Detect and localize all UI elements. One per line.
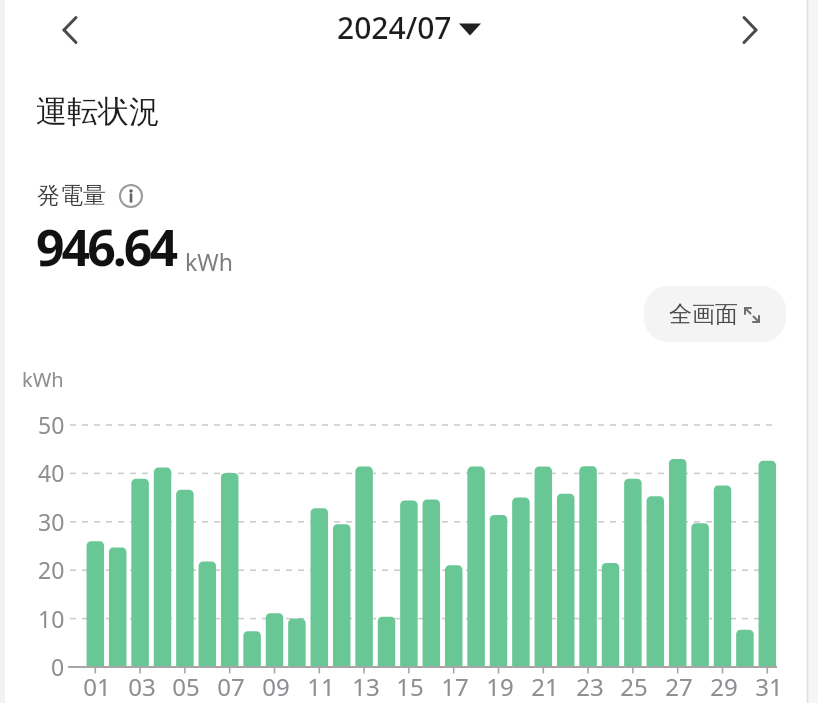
button[interactable] — [50, 8, 90, 52]
staticText: 11 — [307, 670, 335, 703]
staticText: 全画面 — [669, 300, 738, 329]
staticText: 01 — [83, 670, 111, 703]
staticText: 05 — [172, 670, 200, 703]
staticText: 20 — [38, 554, 65, 585]
staticText: 29 — [710, 670, 738, 703]
staticText: 40 — [38, 457, 65, 488]
staticText: kWh — [185, 246, 233, 277]
staticText: 19 — [486, 670, 514, 703]
staticText: 0 — [51, 651, 65, 682]
staticText: 07 — [217, 670, 245, 703]
staticText: 03 — [128, 670, 156, 703]
staticText: kWh — [22, 366, 64, 393]
staticText: 23 — [576, 670, 604, 703]
button[interactable] — [730, 8, 770, 52]
staticText: 発電量 — [37, 181, 106, 210]
button[interactable]: 全画面 — [644, 286, 786, 342]
staticText: 50 — [38, 409, 65, 440]
staticText: 運転状況 — [36, 92, 160, 131]
staticText: 21 — [531, 670, 559, 703]
staticText: 2024/07 — [337, 7, 452, 48]
staticText: 10 — [38, 603, 65, 634]
staticText: 09 — [262, 670, 290, 703]
staticText: 25 — [620, 670, 648, 703]
button[interactable]: 2024/07 — [337, 5, 481, 49]
staticText: 27 — [665, 670, 693, 703]
staticText: 13 — [352, 670, 380, 703]
staticText: 31 — [755, 670, 783, 703]
staticText: 946.64 — [36, 213, 176, 281]
staticText: 15 — [396, 670, 424, 703]
staticText: 30 — [38, 506, 65, 537]
button[interactable] — [118, 183, 144, 209]
staticText: 17 — [441, 670, 469, 703]
